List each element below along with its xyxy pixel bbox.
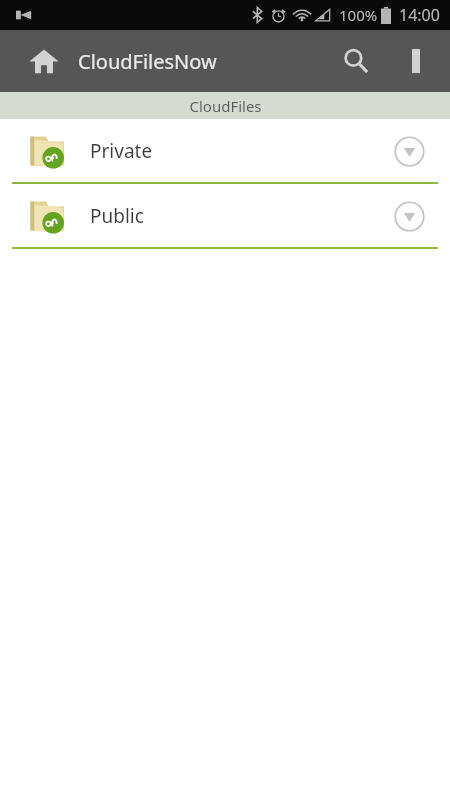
staticText: CloudFilesNow: [78, 48, 217, 75]
button[interactable]: More options: [396, 41, 436, 81]
staticText: Private: [90, 138, 153, 164]
button[interactable]: Expand Public: [388, 195, 430, 237]
staticText: 14:00: [399, 4, 440, 26]
staticText: CloudFiles: [189, 96, 262, 116]
button[interactable]: Home: [22, 39, 66, 83]
button[interactable]: Private: [0, 119, 450, 182]
button[interactable]: Public: [0, 184, 450, 247]
button[interactable]: Expand Private: [388, 130, 430, 172]
staticText: Public: [90, 203, 144, 229]
staticText: 100%: [339, 5, 378, 25]
button[interactable]: Search: [332, 37, 380, 85]
